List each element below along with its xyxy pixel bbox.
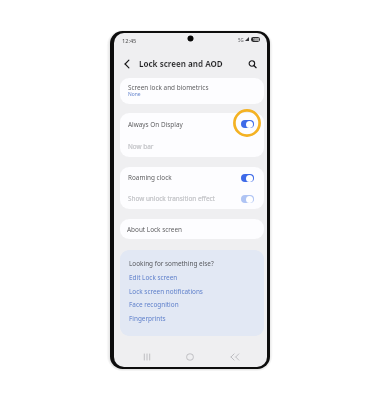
button[interactable]: Lock screen notifications: [129, 287, 203, 296]
staticText: None: [128, 91, 141, 98]
button[interactable]: Home: [184, 351, 196, 363]
button[interactable]: Fingerprints: [129, 314, 166, 323]
button[interactable]: Show unlock transition effect: [120, 188, 264, 209]
staticText: Now bar: [128, 142, 154, 151]
staticText: 5G: [238, 37, 244, 43]
button[interactable]: Screen lock and biometrics: [120, 78, 264, 104]
button[interactable]: Back: [121, 58, 133, 70]
button[interactable]: Search: [246, 58, 258, 70]
button[interactable]: Face recognition: [129, 300, 179, 309]
button[interactable]: Now bar: [120, 135, 264, 157]
staticText: Always On Display: [128, 120, 183, 129]
button[interactable]: Back: [229, 351, 241, 363]
button[interactable]: Roaming clock: [120, 167, 264, 188]
staticText: About Lock screen: [127, 225, 182, 234]
button[interactable]: Edit Lock screen: [129, 273, 178, 282]
staticText: Roaming clock: [128, 173, 172, 182]
staticText: Lock screen and AOD: [139, 58, 223, 69]
button[interactable]: Recent apps: [141, 351, 153, 363]
staticText: Looking for something else?: [129, 259, 214, 268]
staticText: Screen lock and biometrics: [128, 83, 209, 92]
button[interactable]: Always On Display: [120, 113, 264, 135]
staticText: Show unlock transition effect: [128, 194, 215, 203]
staticText: 100: [253, 37, 259, 42]
staticText: 12:45: [122, 37, 137, 45]
